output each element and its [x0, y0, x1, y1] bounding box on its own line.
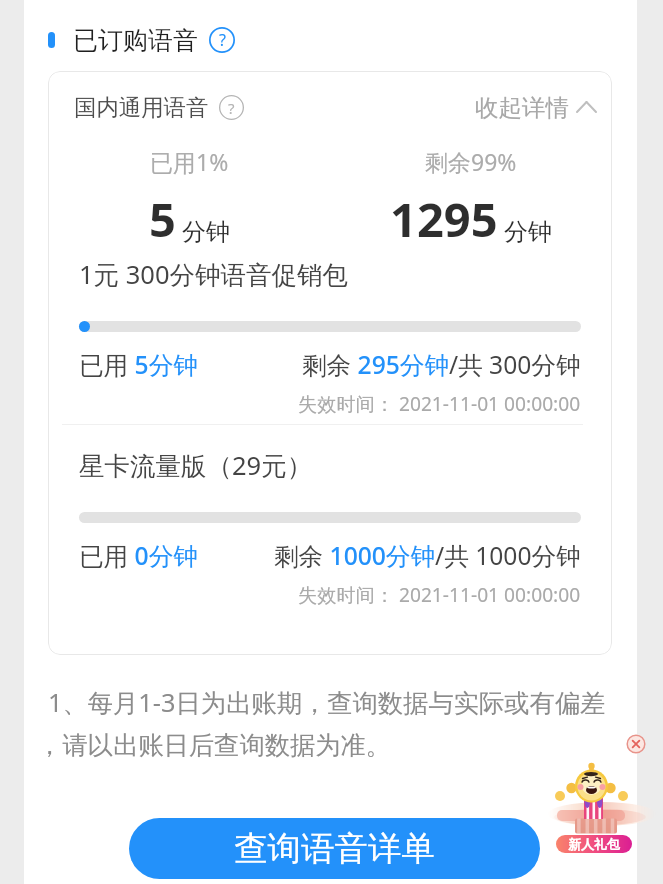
button[interactable]: Close [626, 734, 646, 754]
staticText: 剩余 295分钟/共 300分钟 [302, 348, 581, 382]
staticText: 分钟 [182, 217, 230, 247]
staticText: 星卡流量版（29元） [79, 448, 313, 483]
staticText: ，请以出账日后查询数据为准。 [37, 730, 392, 762]
staticText: 剩余 1000分钟/共 1000分钟 [274, 539, 581, 573]
staticText: 分钟 [504, 217, 552, 247]
staticText: 失效时间： 2021-11-01 00:00:00 [298, 581, 581, 607]
staticText: 1元 300分钟语音促销包 [79, 257, 348, 292]
button[interactable]: 查询语音详单 [129, 818, 540, 879]
staticText: 已订购语音 [73, 25, 198, 55]
button[interactable]: 收起详情 [64, 93, 597, 121]
staticText: 国内通用语音 [74, 93, 209, 121]
staticText: ? [219, 29, 226, 51]
staticText: ? [228, 98, 235, 118]
staticText: 新人礼包 [568, 836, 620, 852]
staticText: 1295 [390, 187, 498, 251]
staticText: 查询语音详单 [234, 828, 435, 870]
staticText: 已用 5分钟 [79, 348, 198, 382]
staticText: 失效时间： 2021-11-01 00:00:00 [298, 390, 581, 416]
staticText: 剩余99% [425, 146, 517, 177]
staticText: 5 [149, 187, 176, 251]
staticText: 1、每月1-3日为出账期，查询数据与实际或有偏差 [48, 685, 606, 720]
staticText: 已用1% [150, 146, 229, 177]
staticText: 收起详情 [475, 93, 569, 121]
button[interactable]: 新人礼包 [548, 752, 656, 882]
staticText: 已用 0分钟 [79, 539, 198, 573]
